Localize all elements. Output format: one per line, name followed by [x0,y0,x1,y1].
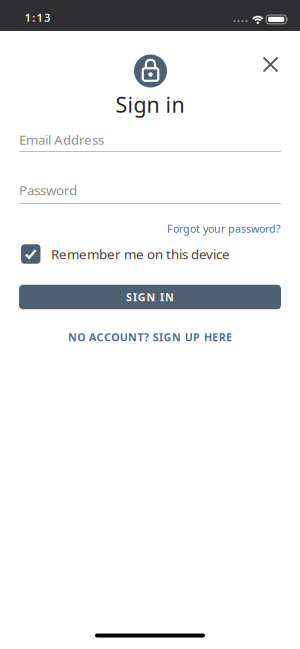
button[interactable]: NO ACCOUNT? SIGN UP HERE [68,330,232,344]
staticText: Remember me on this device [51,245,230,263]
staticText: Email Address [19,131,104,148]
staticText: Sign in [115,90,184,119]
staticText: SIGN IN [126,290,174,304]
button[interactable]: SIGN IN [19,285,281,309]
staticText: Password [19,181,77,199]
staticText: Forgot your password? [167,221,281,236]
staticText: 1:13 [25,10,50,25]
button[interactable]: Forgot your password? [167,221,300,236]
staticText: NO ACCOUNT? SIGN UP HERE [68,330,232,344]
button[interactable]: Close [255,49,285,79]
button[interactable]: Remember me on this device [0,244,230,264]
